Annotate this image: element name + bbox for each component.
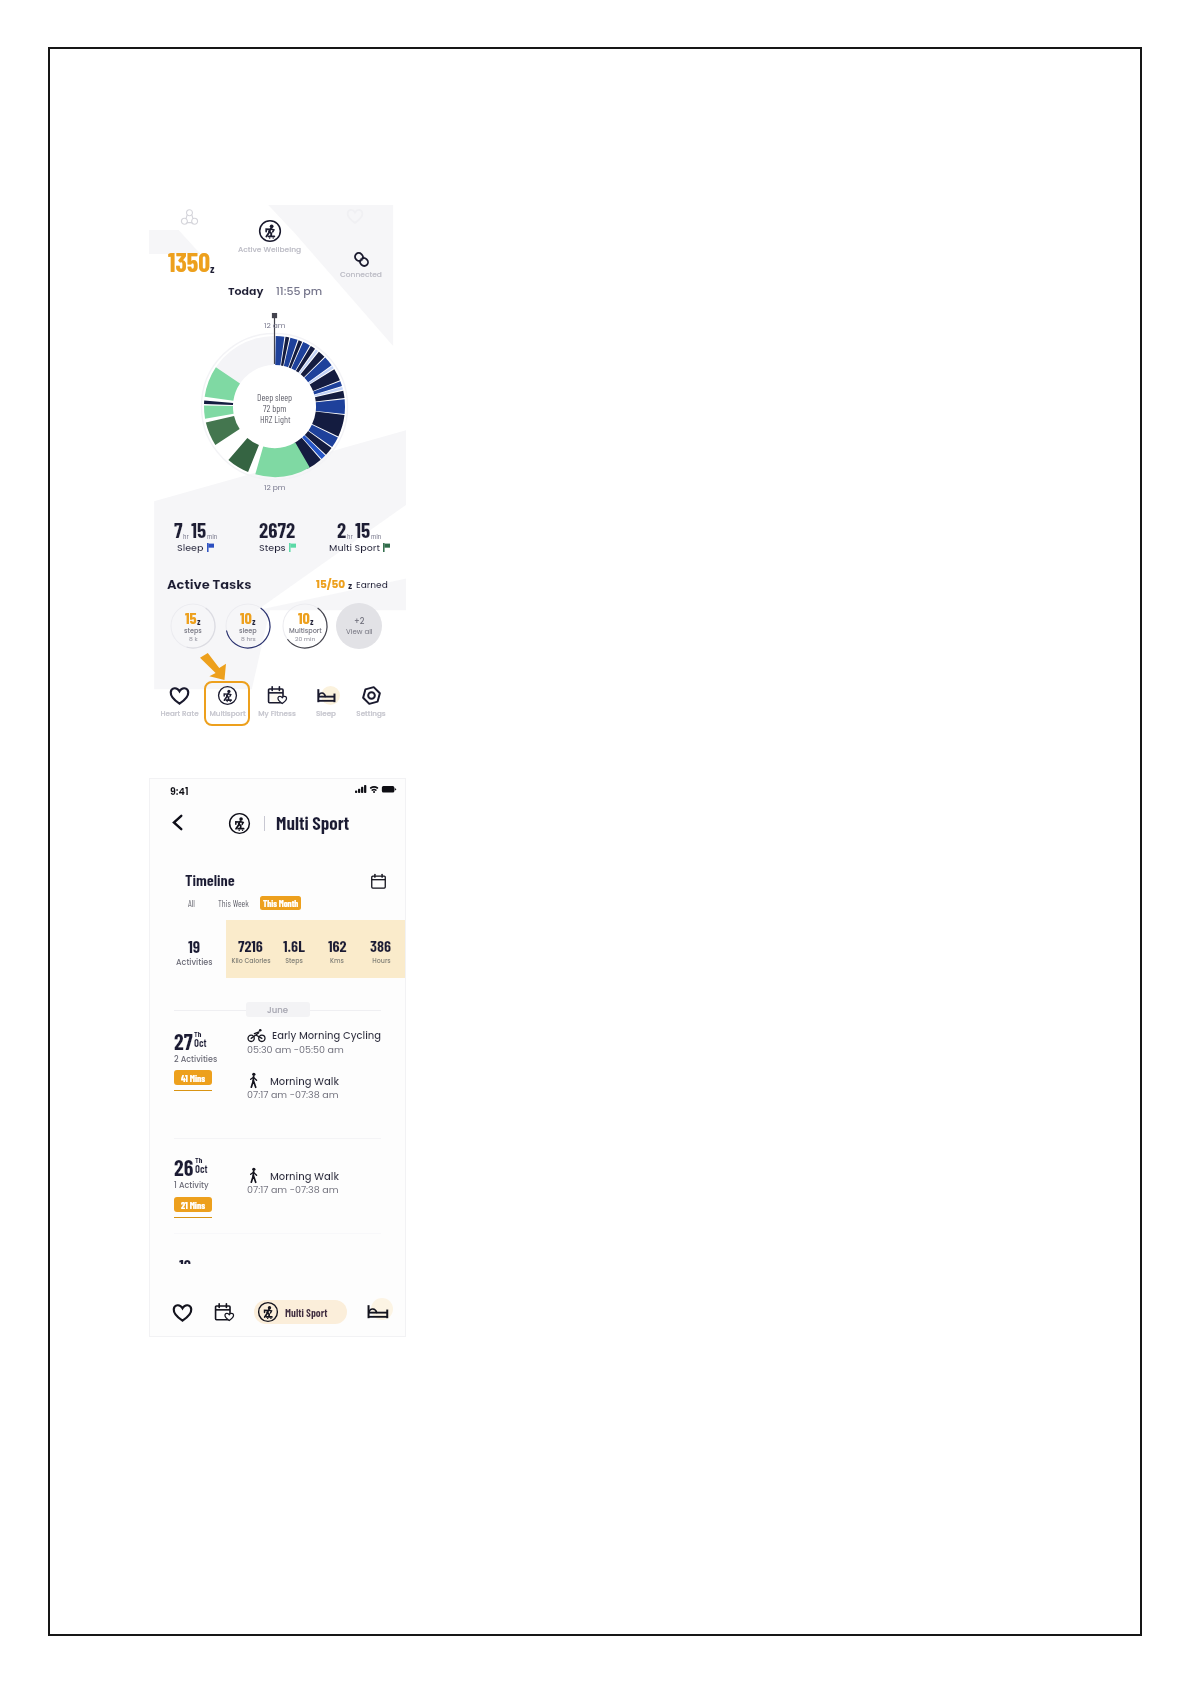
staticText: z bbox=[348, 580, 353, 592]
staticText: +2 bbox=[354, 616, 365, 627]
staticText: Th bbox=[194, 1029, 202, 1039]
staticText: steps bbox=[184, 626, 202, 635]
staticText: 15 bbox=[185, 608, 197, 627]
staticText: Today bbox=[228, 283, 264, 298]
staticText: Morning Walk bbox=[270, 1074, 339, 1088]
staticText: Steps bbox=[285, 956, 303, 965]
staticText: Multi Sport bbox=[329, 541, 380, 554]
button[interactable]: Sleep bbox=[363, 1297, 392, 1326]
staticText: 20 min bbox=[295, 635, 316, 643]
staticText: 11:55 pm bbox=[276, 283, 323, 298]
staticText: 162 bbox=[328, 936, 347, 955]
staticText: hr bbox=[183, 531, 189, 541]
button[interactable]: Morning Walk bbox=[248, 1168, 339, 1183]
button[interactable]: This Week bbox=[213, 896, 253, 910]
staticText: Earned bbox=[356, 579, 388, 592]
staticText: Multi Sport bbox=[285, 1306, 328, 1319]
staticText: 2672 bbox=[259, 517, 296, 542]
button[interactable]: Settings bbox=[348, 686, 394, 726]
staticText: Morning Walk bbox=[270, 1169, 339, 1183]
staticText: Oct bbox=[195, 1162, 208, 1175]
button[interactable]: Heart Rate bbox=[156, 686, 202, 726]
staticText: This Month bbox=[263, 898, 299, 909]
staticText: All bbox=[188, 898, 195, 909]
staticText: 19 bbox=[188, 936, 201, 956]
staticText: z bbox=[310, 615, 314, 626]
staticText: Activities bbox=[176, 957, 213, 968]
button[interactable]: Early Morning Cycling bbox=[248, 1028, 382, 1042]
staticText: 10 bbox=[240, 608, 252, 627]
staticText: Connected bbox=[340, 269, 382, 279]
button[interactable]: This Month bbox=[260, 896, 301, 910]
staticText: Active Wellbeing bbox=[238, 244, 302, 254]
staticText: 15/50 bbox=[316, 577, 346, 592]
staticText: Multisport bbox=[289, 626, 322, 635]
staticText: 7216 bbox=[238, 936, 263, 955]
button[interactable]: 21 Mins bbox=[174, 1197, 212, 1212]
staticText: June bbox=[267, 1004, 289, 1016]
staticText: 72 bpm bbox=[263, 402, 287, 413]
staticText: 26 bbox=[174, 1154, 194, 1180]
staticText: Timeline bbox=[185, 870, 235, 889]
staticText: 2 Activities bbox=[174, 1054, 218, 1065]
staticText: Settings bbox=[356, 708, 386, 718]
staticText: 07:17 am -07:38 am bbox=[247, 1183, 339, 1196]
staticText: 21 Mins bbox=[181, 1199, 206, 1210]
staticText: 12 am bbox=[264, 320, 286, 330]
button[interactable]: 10 bbox=[225, 603, 271, 649]
staticText: 12 pm bbox=[264, 482, 286, 492]
button[interactable]: Connected bbox=[339, 251, 383, 279]
button[interactable]: All bbox=[182, 896, 200, 910]
staticText: 1350 bbox=[168, 246, 210, 277]
staticText: 2 bbox=[337, 517, 347, 542]
staticText: 8 hrs bbox=[241, 635, 256, 643]
staticText: HRZ Light bbox=[260, 413, 291, 424]
button[interactable]: Heart Rate bbox=[168, 1298, 196, 1326]
staticText: Kilo Calories bbox=[231, 956, 271, 965]
staticText: 15 bbox=[191, 517, 207, 542]
button[interactable]: 10 bbox=[282, 603, 328, 649]
button[interactable]: My Fitness bbox=[210, 1298, 238, 1326]
button[interactable]: Morning Walk bbox=[248, 1073, 339, 1088]
staticText: 10 bbox=[298, 608, 310, 627]
staticText: Multi Sport bbox=[276, 811, 350, 834]
staticText: z bbox=[210, 261, 215, 275]
staticText: 41 Mins bbox=[181, 1072, 206, 1083]
button[interactable]: +2 bbox=[336, 603, 382, 649]
button[interactable]: My Fitness bbox=[254, 686, 300, 726]
staticText: 05:30 am -05:50 am bbox=[247, 1043, 344, 1056]
staticText: My Fitness bbox=[258, 708, 296, 718]
staticText: Deep sleep bbox=[257, 391, 293, 402]
staticText: 07:17 am -07:38 am bbox=[247, 1088, 339, 1101]
staticText: min bbox=[371, 531, 382, 541]
staticText: Sleep bbox=[177, 541, 204, 554]
staticText: sleep bbox=[239, 626, 257, 635]
button[interactable]: Activity rings bbox=[181, 209, 198, 226]
staticText: Sleep bbox=[316, 708, 336, 718]
staticText: Th bbox=[195, 1155, 203, 1165]
staticText: 1.6L bbox=[283, 936, 305, 955]
staticText: Active Tasks bbox=[167, 575, 252, 593]
staticText: 8 k bbox=[189, 635, 198, 643]
staticText: hr bbox=[347, 531, 353, 541]
staticText: 9:41 bbox=[170, 785, 189, 798]
button[interactable]: Multisport bbox=[204, 686, 250, 726]
button[interactable]: Sleep bbox=[303, 686, 349, 726]
staticText: z bbox=[252, 615, 256, 626]
staticText: 386 bbox=[370, 936, 392, 955]
staticText: 1 Activity bbox=[174, 1180, 209, 1191]
staticText: Multisport bbox=[209, 708, 246, 718]
button[interactable]: 15 bbox=[170, 603, 216, 649]
staticText: Heart Rate bbox=[160, 708, 199, 718]
staticText: 7 bbox=[174, 517, 183, 542]
button[interactable]: 41 Mins bbox=[174, 1070, 212, 1085]
button[interactable]: Calendar bbox=[367, 870, 389, 892]
staticText: Early Morning Cycling bbox=[272, 1028, 382, 1042]
staticText: Kms bbox=[330, 956, 344, 965]
button[interactable]: Back bbox=[166, 811, 189, 834]
staticText: This Week bbox=[218, 898, 249, 909]
staticText: View all bbox=[346, 627, 373, 637]
staticText: Hours bbox=[372, 956, 391, 965]
staticText: Oct bbox=[194, 1036, 207, 1049]
button[interactable]: Multi Sport bbox=[254, 1300, 347, 1324]
